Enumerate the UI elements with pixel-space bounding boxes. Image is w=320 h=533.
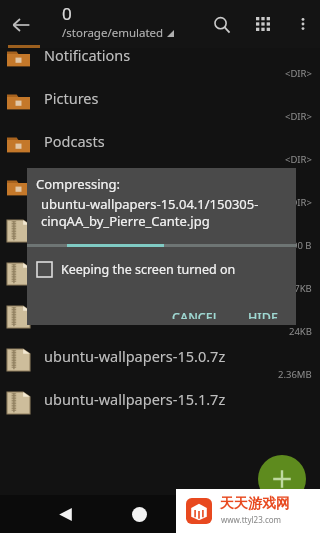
- button[interactable]: Search: [205, 8, 239, 42]
- staticText: <DIR>: [285, 110, 312, 123]
- staticText: CANCEL: [172, 309, 220, 319]
- staticText: <DIR>: [285, 153, 312, 166]
- button[interactable]: Notifications: [0, 39, 320, 82]
- staticText: /storage/emulated: [62, 25, 164, 41]
- button[interactable]: ubuntu-wallpapers-15.0.7z: [0, 340, 320, 383]
- staticText: Pictures: [44, 88, 99, 108]
- staticText: Download.7z: [44, 217, 132, 237]
- staticText: Ringtones: [44, 174, 113, 194]
- button[interactable]: Download.7z: [0, 211, 320, 254]
- staticText: <DIR>: [285, 196, 312, 209]
- staticText: <DIR>: [285, 67, 312, 80]
- staticText: ubuntu-wallpapers-15.1.7z: [44, 389, 226, 409]
- button[interactable]: libusb-1.0.21.zip: [0, 297, 320, 340]
- staticText: Notifications: [44, 45, 131, 65]
- button[interactable]: Back: [52, 501, 78, 527]
- button[interactable]: Keeping the screen turned on: [37, 261, 296, 278]
- staticText: 24KB: [289, 325, 312, 338]
- staticText: HIDE: [248, 309, 278, 319]
- button[interactable]: View mode: [247, 8, 281, 42]
- staticText: ubuntu-wallpapers-15.0.7z: [44, 346, 226, 366]
- button[interactable]: Podcasts: [0, 125, 320, 168]
- staticText: 2.36MB: [278, 368, 312, 381]
- staticText: Compressing:: [36, 175, 120, 193]
- staticText: 90 B: [292, 239, 312, 252]
- staticText: IFFSpecs.lzh: [44, 260, 127, 280]
- button[interactable]: ubuntu-wallpapers-15.1.7z: [0, 383, 320, 426]
- staticText: ubuntu-wallpapers-15.04.1/150305-cinqAA_…: [41, 195, 290, 230]
- button[interactable]: CANCEL: [162, 303, 230, 325]
- button[interactable]: IFFSpecs.lzh: [0, 254, 320, 297]
- staticText: 319.07KB: [270, 282, 312, 295]
- button[interactable]: HIDE: [238, 303, 288, 325]
- button[interactable]: More options: [287, 8, 319, 40]
- button[interactable]: Ringtones: [0, 168, 320, 211]
- button[interactable]: Add: [258, 455, 306, 503]
- staticText: 天天游戏网: [220, 495, 290, 513]
- staticText: Podcasts: [44, 131, 105, 151]
- button[interactable]: Home: [127, 502, 151, 526]
- staticText: 0: [62, 2, 72, 25]
- button[interactable]: Back: [2, 6, 40, 44]
- button[interactable]: Pictures: [0, 82, 320, 125]
- staticText: www.ttyl23.com: [221, 514, 282, 525]
- staticText: Keeping the screen turned on: [61, 261, 236, 278]
